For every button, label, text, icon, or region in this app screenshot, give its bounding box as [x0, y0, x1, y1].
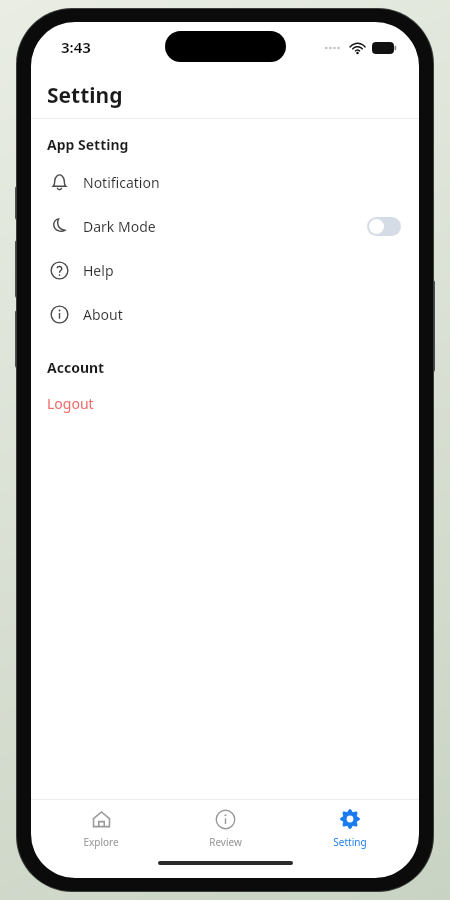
staticText: About — [83, 305, 123, 324]
staticText: Logout — [47, 394, 94, 413]
staticText: Dark Mode — [83, 217, 156, 236]
button[interactable]: Logout — [31, 383, 419, 423]
button[interactable]: Dark Mode — [31, 204, 419, 248]
staticText: App Setting — [47, 135, 129, 154]
staticText: Account — [47, 358, 105, 377]
staticText: Help — [83, 261, 114, 280]
button[interactable]: Setting — [295, 804, 405, 853]
staticText: Notification — [83, 173, 160, 192]
staticText: Setting — [333, 835, 367, 849]
other: Setting — [339, 808, 361, 830]
button[interactable]: Help — [31, 248, 419, 292]
staticText: 3:43 — [61, 37, 91, 57]
button[interactable]: Explore — [46, 804, 156, 853]
button[interactable]: Notification — [31, 160, 419, 204]
button[interactable]: Review — [170, 804, 280, 853]
staticText: Review — [209, 835, 242, 849]
button[interactable]: About — [31, 292, 419, 336]
staticText: Setting — [47, 81, 123, 110]
staticText: Explore — [83, 835, 119, 849]
button[interactable]: Dark Mode toggle — [367, 217, 401, 236]
